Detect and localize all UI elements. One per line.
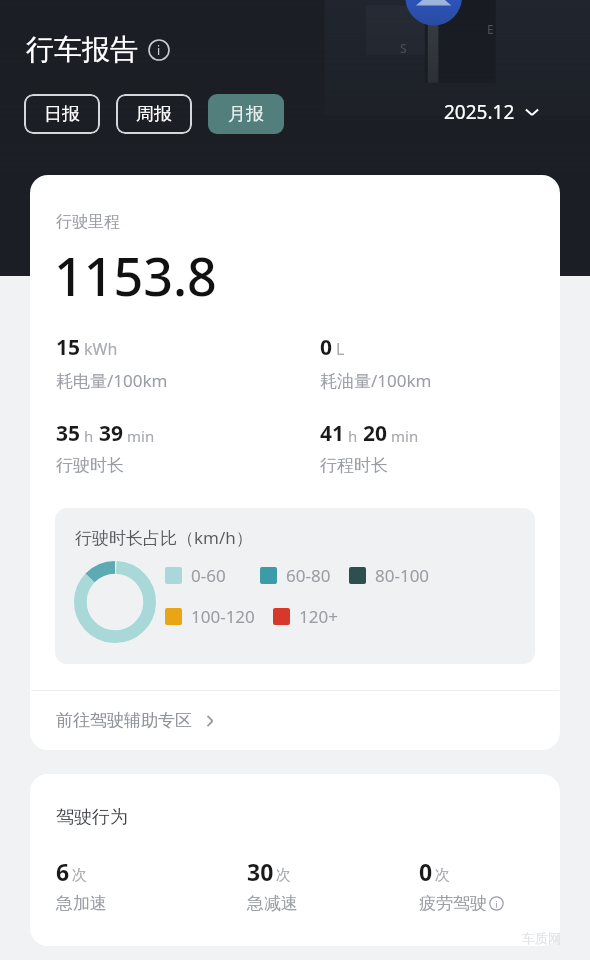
staticText: 次 (435, 866, 450, 885)
staticText: 行驶时长占比（km/h） (75, 526, 253, 549)
staticText: 行车报告 (26, 32, 138, 67)
staticText: 0 (320, 333, 333, 362)
staticText: 耗油量/100km (320, 369, 432, 392)
staticText: L (336, 338, 345, 360)
staticText: min (391, 426, 419, 446)
staticText: 0-60 (191, 564, 226, 587)
staticText: min (127, 426, 155, 446)
button[interactable]: 前往驾驶辅助专区 (30, 691, 560, 750)
button[interactable]: 日报 (24, 94, 100, 134)
staticText: 次 (72, 866, 87, 885)
button[interactable]: 周报 (116, 94, 192, 134)
staticText: 前往驾驶辅助专区 (56, 710, 192, 731)
staticText: 行驶里程 (56, 212, 120, 232)
staticText: 60-80 (286, 564, 331, 587)
staticText: 日报 (44, 103, 80, 126)
staticText: 120+ (299, 605, 338, 628)
staticText: 疲劳驾驶 (419, 893, 487, 914)
staticText: i (495, 898, 498, 910)
button[interactable]: 2025.12 (444, 99, 541, 125)
staticText: 0 (419, 856, 433, 887)
button[interactable]: 月报 (208, 94, 284, 134)
staticText: 2025.12 (444, 99, 515, 125)
staticText: 30 (247, 856, 274, 887)
staticText: 39 (99, 419, 124, 448)
staticText: 月报 (228, 103, 264, 126)
staticText: 行驶时长 (56, 455, 124, 476)
staticText: S (400, 40, 407, 56)
staticText: i (157, 42, 161, 58)
staticText: 急减速 (247, 893, 298, 914)
button[interactable]: 说明 (148, 39, 170, 61)
staticText: 急加速 (56, 893, 107, 914)
staticText: 次 (276, 866, 291, 885)
staticText: 1153.8 (54, 240, 217, 311)
staticText: 41 (320, 419, 345, 448)
staticText: 周报 (136, 103, 172, 126)
staticText: h (84, 426, 94, 446)
staticText: 35 (56, 419, 81, 448)
staticText: 15 (56, 333, 81, 362)
staticText: 行程时长 (320, 455, 388, 476)
staticText: 驾驶行为 (56, 806, 128, 829)
staticText: 耗电量/100km (56, 369, 168, 392)
staticText: 车质网 (522, 930, 561, 946)
staticText: kWh (84, 338, 118, 360)
staticText: 100-120 (191, 605, 255, 628)
staticText: h (348, 426, 358, 446)
staticText: 20 (363, 419, 388, 448)
staticText: 80-100 (375, 564, 430, 587)
button[interactable]: 疲劳驾驶说明 (489, 896, 504, 911)
staticText: E (487, 21, 494, 37)
staticText: 6 (56, 856, 70, 887)
